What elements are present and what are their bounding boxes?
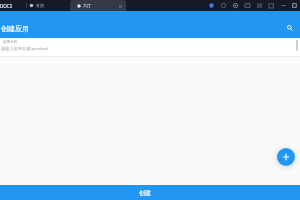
button[interactable]: 应用名称 xyxy=(0,38,300,56)
staticText: DOCS xyxy=(0,3,13,9)
button[interactable]: Notifications xyxy=(205,0,217,11)
staticText: 大厅 xyxy=(83,3,91,8)
button[interactable]: Restore xyxy=(265,0,277,11)
button[interactable]: Menu xyxy=(253,0,265,11)
button[interactable]: Search xyxy=(285,23,295,33)
button[interactable]: Add xyxy=(277,148,295,166)
staticText: 首页 xyxy=(36,3,44,8)
button[interactable]: 创建 xyxy=(0,185,300,200)
staticText: 请输入应用名称 gradient xyxy=(1,46,49,52)
button[interactable]: Account xyxy=(217,0,229,11)
button[interactable]: 大厅 xyxy=(70,0,126,11)
staticText: 创建 xyxy=(139,189,151,197)
button[interactable]: 首页 xyxy=(29,0,44,11)
button[interactable]: Mail xyxy=(241,0,253,11)
button[interactable]: Maximize xyxy=(289,0,300,11)
staticText: 应用名称 xyxy=(3,40,18,45)
staticText: 创建应用 xyxy=(1,24,29,33)
button[interactable]: Minimize xyxy=(277,0,289,11)
button[interactable]: Close tab xyxy=(117,3,123,9)
button[interactable]: Settings xyxy=(229,0,241,11)
